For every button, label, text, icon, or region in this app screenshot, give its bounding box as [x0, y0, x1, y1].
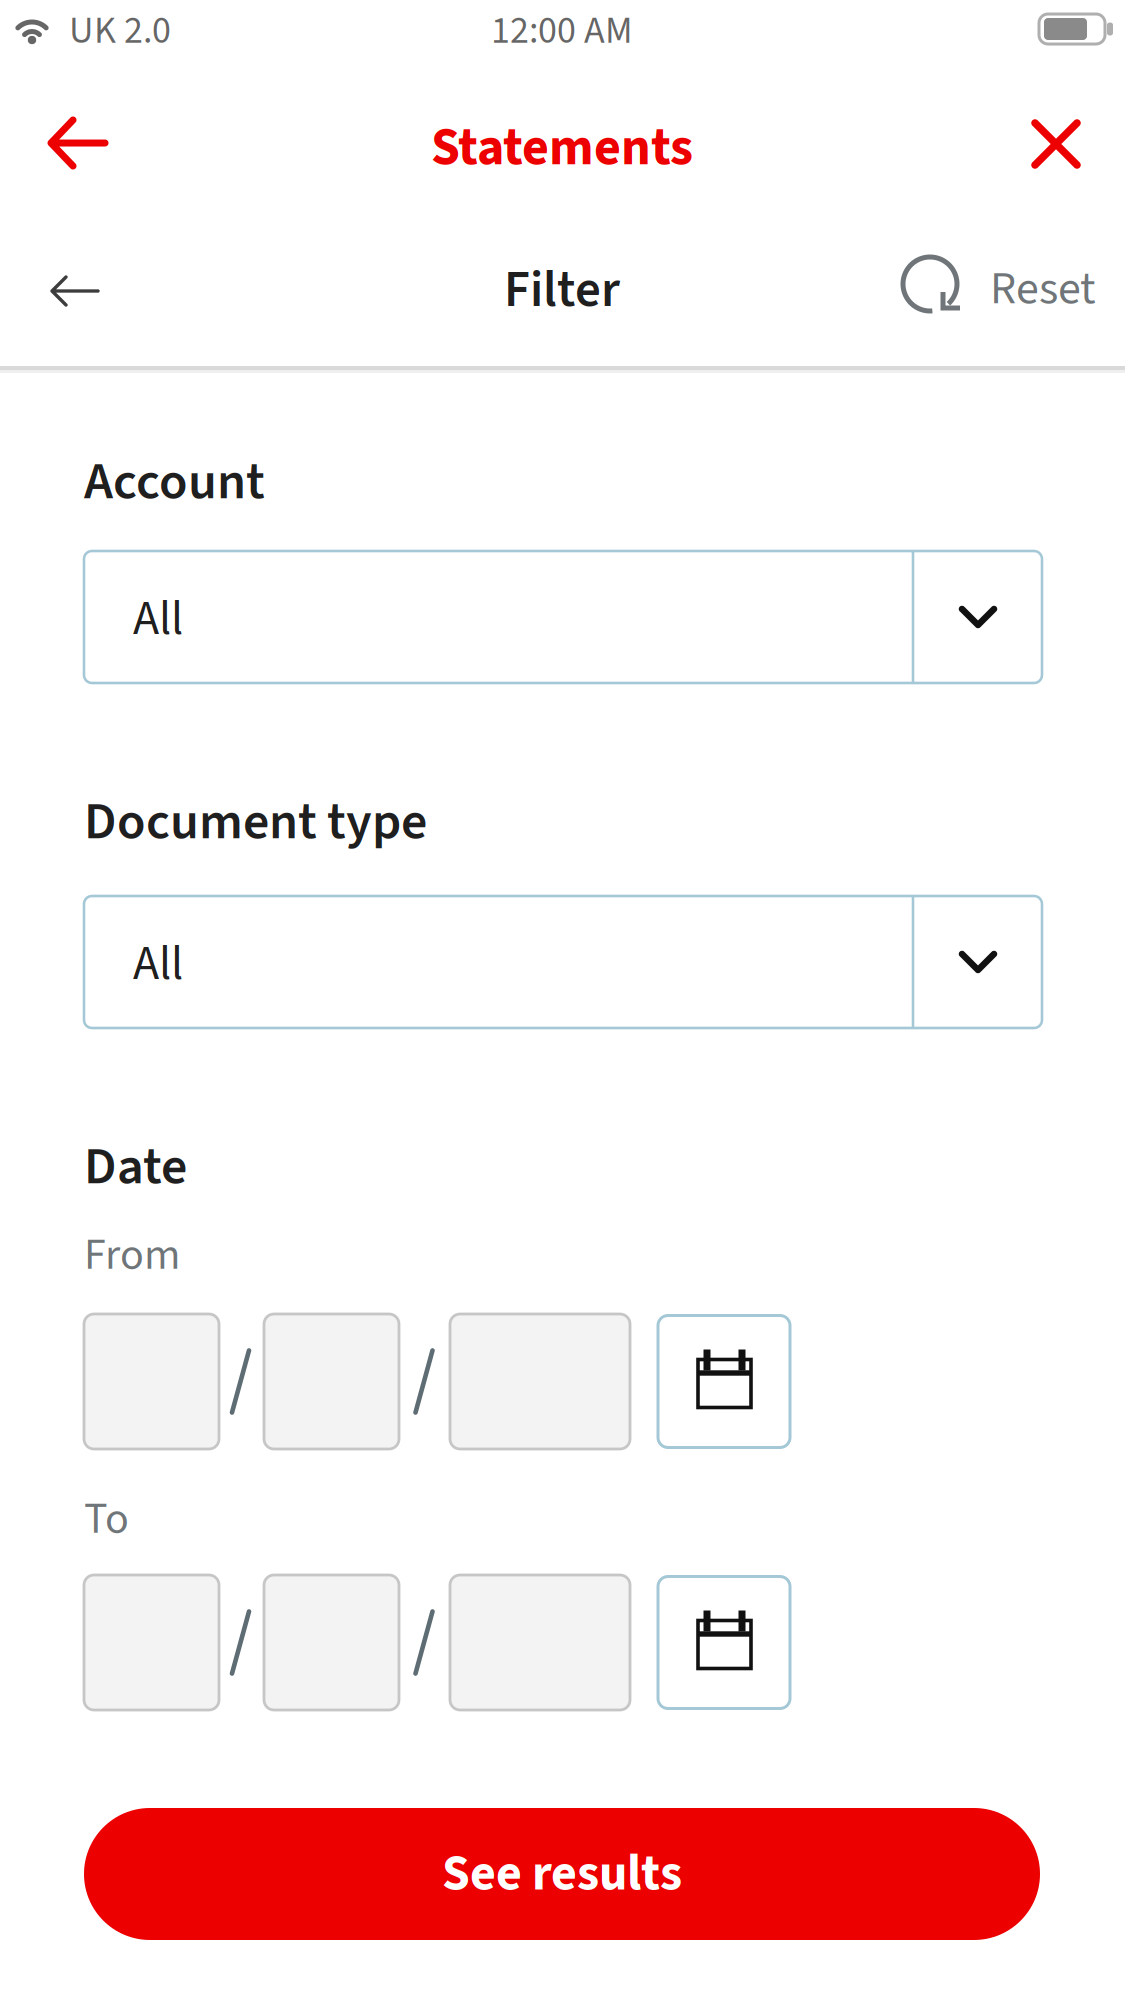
- staticText: Statements: [431, 104, 693, 192]
- staticText: Date: [84, 1123, 187, 1211]
- staticText: All: [133, 923, 183, 1005]
- button[interactable]: Close: [996, 84, 1116, 204]
- button[interactable]: All: [84, 551, 1042, 683]
- staticText: Document type: [84, 778, 427, 866]
- button[interactable]: Month: [264, 1575, 399, 1710]
- staticText: Reset: [990, 250, 1096, 328]
- button[interactable]: See results: [84, 1808, 1040, 1940]
- button[interactable]: Year: [450, 1314, 630, 1449]
- button[interactable]: All: [84, 896, 1042, 1028]
- staticText: 12:00 AM: [491, 0, 633, 63]
- staticText: UK 2.0: [69, 0, 171, 63]
- button[interactable]: Day: [84, 1575, 219, 1710]
- button[interactable]: Back: [24, 241, 124, 341]
- staticText: To: [84, 1482, 129, 1556]
- button[interactable]: Year: [450, 1575, 630, 1710]
- button[interactable]: Choose date: [658, 1315, 790, 1447]
- staticText: Account: [84, 438, 265, 526]
- staticText: See results: [442, 1832, 682, 1916]
- staticText: All: [133, 578, 183, 660]
- staticText: Filter: [504, 247, 620, 333]
- button[interactable]: Month: [264, 1314, 399, 1449]
- staticText: From: [84, 1218, 180, 1292]
- button[interactable]: Reset: [898, 246, 1110, 330]
- button[interactable]: Back: [18, 83, 138, 203]
- button[interactable]: Choose date: [658, 1576, 790, 1708]
- button[interactable]: Day: [84, 1314, 219, 1449]
